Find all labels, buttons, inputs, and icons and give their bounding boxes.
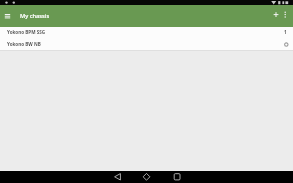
button[interactable] [137, 171, 156, 183]
staticText: 1 [284, 29, 287, 35]
button[interactable] [108, 171, 127, 183]
staticText: Yokono BW NB [7, 41, 41, 47]
button[interactable] [268, 5, 282, 27]
staticText: My chassis [20, 12, 50, 20]
button[interactable] [167, 171, 186, 183]
button[interactable]: Yokono BW NB [0, 38, 293, 50]
button[interactable] [0, 5, 18, 27]
button[interactable] [282, 5, 293, 27]
button[interactable]: Yokono BPM SSG [0, 27, 293, 38]
staticText: Yokono BPM SSG [7, 29, 46, 35]
